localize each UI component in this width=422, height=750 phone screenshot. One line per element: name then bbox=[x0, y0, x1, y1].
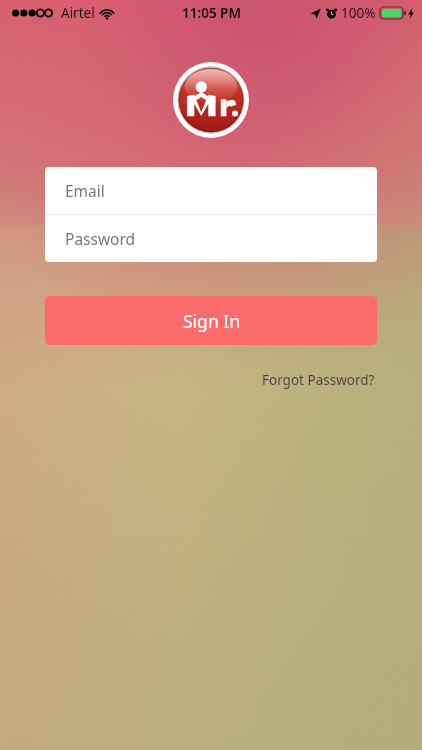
button[interactable]: Sign In bbox=[45, 296, 377, 345]
staticText: Forgot Password? bbox=[262, 371, 375, 389]
staticText: 100% bbox=[341, 4, 376, 22]
button[interactable]: Forgot Password? bbox=[260, 367, 377, 393]
staticText: Password bbox=[65, 228, 136, 249]
button[interactable]: Email bbox=[45, 167, 377, 214]
staticText: Airtel bbox=[61, 4, 95, 22]
button[interactable]: Password bbox=[45, 215, 377, 262]
staticText: Email bbox=[65, 180, 105, 201]
staticText: Sign In bbox=[183, 309, 240, 333]
staticText: 11:05 PM bbox=[182, 4, 241, 22]
other: Mr. app logo bbox=[173, 62, 249, 138]
